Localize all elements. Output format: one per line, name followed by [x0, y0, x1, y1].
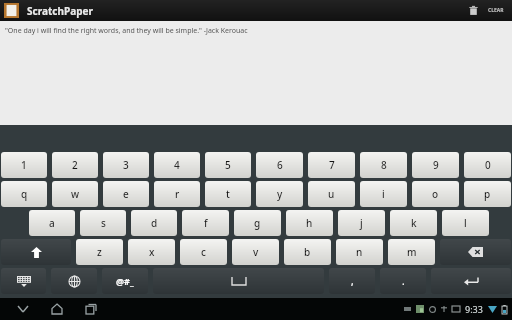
staticText: 5	[225, 158, 231, 172]
staticText: l	[464, 216, 467, 230]
button[interactable]: z	[76, 239, 123, 265]
button[interactable]: Enter	[431, 268, 511, 294]
button[interactable]: f	[182, 210, 229, 236]
button[interactable]: Change language	[51, 268, 97, 294]
staticText: o	[432, 187, 439, 201]
staticText: y	[277, 187, 283, 201]
button[interactable]: "One day i will find the right words, an…	[0, 21, 512, 125]
button[interactable]: u	[308, 181, 355, 207]
button[interactable]: m	[388, 239, 435, 265]
button[interactable]: r	[154, 181, 200, 207]
staticText: r	[175, 187, 180, 201]
staticText: 9	[433, 158, 439, 172]
staticText: 7	[329, 158, 335, 172]
button[interactable]: 5	[205, 152, 251, 178]
staticText: 4	[174, 158, 180, 172]
button[interactable]: i	[360, 181, 407, 207]
button[interactable]: d	[131, 210, 177, 236]
staticText: CLEAR	[488, 7, 504, 14]
button[interactable]: t	[205, 181, 251, 207]
button[interactable]: Delete	[462, 0, 484, 21]
staticText: ,	[351, 274, 354, 288]
button[interactable]: o	[412, 181, 459, 207]
staticText: w	[71, 187, 80, 201]
staticText: u	[328, 187, 335, 201]
staticText: 9:33	[465, 303, 483, 315]
staticText: z	[97, 245, 102, 259]
staticText: h	[306, 216, 313, 230]
button[interactable]: b	[284, 239, 331, 265]
staticText: d	[151, 216, 158, 230]
button[interactable]: l	[442, 210, 489, 236]
button[interactable]: 1	[1, 152, 47, 178]
button[interactable]: 7	[308, 152, 355, 178]
button[interactable]: 4	[154, 152, 200, 178]
staticText: 8	[381, 158, 387, 172]
staticText: e	[123, 187, 129, 201]
staticText: f	[204, 216, 208, 230]
button[interactable]: x	[128, 239, 175, 265]
staticText: x	[149, 245, 155, 259]
button[interactable]: v	[232, 239, 279, 265]
staticText: j	[360, 216, 363, 230]
staticText: q	[21, 187, 28, 201]
staticText: g	[254, 216, 261, 230]
button[interactable]: 6	[256, 152, 303, 178]
button[interactable]: 8	[360, 152, 407, 178]
staticText: p	[484, 187, 491, 201]
button[interactable]: y	[256, 181, 303, 207]
button[interactable]: Back	[10, 298, 36, 320]
button[interactable]: c	[180, 239, 227, 265]
staticText: s	[101, 216, 106, 230]
button[interactable]: k	[390, 210, 437, 236]
staticText: a	[49, 216, 55, 230]
staticText: i	[382, 187, 385, 201]
button[interactable]: 9	[412, 152, 459, 178]
button[interactable]: Period	[380, 268, 426, 294]
staticText: 1	[21, 158, 27, 172]
button[interactable]: Backspace	[440, 239, 511, 265]
staticText: "One day i will find the right words, an…	[5, 26, 248, 36]
staticText: 3	[123, 158, 129, 172]
button[interactable]: Symbols	[102, 268, 148, 294]
staticText: ScratchPaper	[27, 4, 93, 18]
button[interactable]: 0	[464, 152, 511, 178]
button[interactable]: 3	[103, 152, 149, 178]
staticText: .	[402, 274, 405, 288]
staticText: b	[304, 245, 311, 259]
staticText: t	[226, 187, 230, 201]
staticText: n	[356, 245, 363, 259]
button[interactable]: h	[286, 210, 333, 236]
button[interactable]: Shift	[1, 239, 71, 265]
button[interactable]: Home	[44, 298, 70, 320]
staticText: 2	[72, 158, 78, 172]
button[interactable]: g	[234, 210, 281, 236]
button[interactable]	[3, 2, 20, 19]
button[interactable]: j	[338, 210, 385, 236]
button[interactable]: s	[80, 210, 126, 236]
button[interactable]: a	[29, 210, 75, 236]
button[interactable]: w	[52, 181, 98, 207]
staticText: k	[411, 216, 417, 230]
button[interactable]: p	[464, 181, 511, 207]
button[interactable]: e	[103, 181, 149, 207]
staticText: c	[201, 245, 206, 259]
staticText: @#_	[116, 275, 134, 287]
button[interactable]: n	[336, 239, 383, 265]
staticText: 6	[277, 158, 283, 172]
staticText: m	[407, 245, 417, 259]
button[interactable]: Space	[153, 268, 324, 294]
button[interactable]: Hide keyboard	[1, 268, 46, 294]
button[interactable]: Comma	[329, 268, 375, 294]
button[interactable]: Recent apps	[78, 298, 104, 320]
button[interactable]: q	[1, 181, 47, 207]
staticText: 0	[485, 158, 491, 172]
button[interactable]: CLEAR	[484, 0, 508, 21]
button[interactable]: 2	[52, 152, 98, 178]
staticText: v	[253, 245, 259, 259]
